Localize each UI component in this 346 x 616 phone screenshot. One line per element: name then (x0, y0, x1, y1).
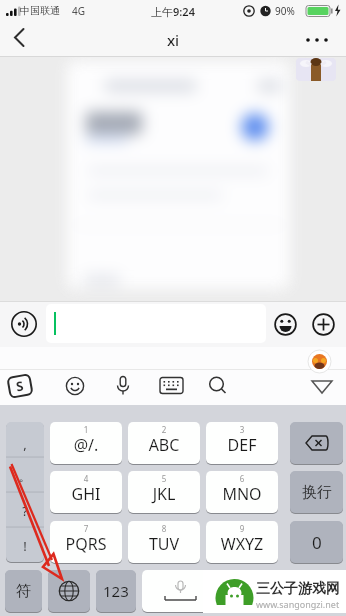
staticText: 上午9:24 (123, 4, 223, 23)
staticText: , (6, 435, 44, 456)
button[interactable] (272, 311, 299, 338)
button[interactable]: 6 (206, 471, 278, 513)
staticText: DEF (206, 434, 278, 456)
button[interactable]: 4 (50, 471, 122, 513)
staticText: 。 (6, 468, 44, 489)
staticText: 中国联通 (20, 4, 80, 22)
staticText: 3 (206, 424, 278, 435)
button[interactable]: 0 (290, 521, 343, 563)
staticText: ABC (128, 434, 200, 456)
staticText: 9 (206, 523, 278, 534)
staticText: @/. (50, 434, 122, 456)
staticText: ? (6, 502, 44, 523)
staticText: WXYZ (206, 533, 278, 555)
staticText: JKL (128, 483, 200, 505)
staticText: 0 (312, 531, 322, 554)
staticText: PQRS (50, 533, 122, 555)
button[interactable] (8, 25, 34, 53)
button[interactable]: S (8, 374, 34, 398)
staticText: 换行 (302, 483, 332, 502)
button[interactable]: 5 (128, 471, 200, 513)
button[interactable] (310, 311, 337, 338)
button[interactable] (46, 304, 266, 343)
button[interactable] (290, 422, 343, 464)
staticText: 4 (50, 473, 122, 484)
staticText: MNO (206, 483, 278, 505)
button[interactable] (142, 570, 278, 612)
button[interactable] (9, 309, 39, 339)
staticText: 5 (128, 473, 200, 484)
staticText: GHI (50, 483, 122, 505)
button[interactable]: 2 (128, 422, 200, 464)
button[interactable]: 7 (50, 521, 122, 563)
button[interactable] (64, 375, 86, 397)
staticText: 4G (72, 4, 96, 22)
button[interactable] (308, 377, 336, 399)
button[interactable] (296, 58, 336, 81)
button[interactable] (284, 570, 343, 612)
staticText: ! (6, 537, 44, 558)
staticText: 1 (50, 424, 122, 435)
staticText: 三公子游戏网 (256, 580, 346, 602)
button[interactable] (206, 374, 230, 398)
button[interactable]: 8 (128, 521, 200, 563)
button[interactable] (159, 376, 185, 396)
staticText: 2 (128, 424, 200, 435)
button[interactable]: 3 (206, 422, 278, 464)
staticText: xi (123, 30, 223, 53)
staticText: 123 (103, 581, 129, 601)
button[interactable]: 123 (96, 570, 136, 612)
staticText: www.sangongzi.net (256, 598, 346, 615)
button[interactable] (48, 570, 90, 612)
staticText: 6 (206, 473, 278, 484)
staticText: TUV (128, 533, 200, 555)
button[interactable]: 符 (5, 570, 42, 612)
button[interactable]: 1 (50, 422, 122, 464)
button[interactable] (300, 26, 340, 54)
button[interactable] (6, 422, 44, 562)
button[interactable]: 换行 (290, 471, 343, 513)
button[interactable]: 9 (206, 521, 278, 563)
staticText: 7 (50, 523, 122, 534)
staticText: 符 (16, 582, 31, 601)
staticText: 90% (275, 4, 305, 22)
staticText: 8 (128, 523, 200, 534)
staticText: S (14, 376, 25, 395)
button[interactable] (112, 374, 134, 398)
